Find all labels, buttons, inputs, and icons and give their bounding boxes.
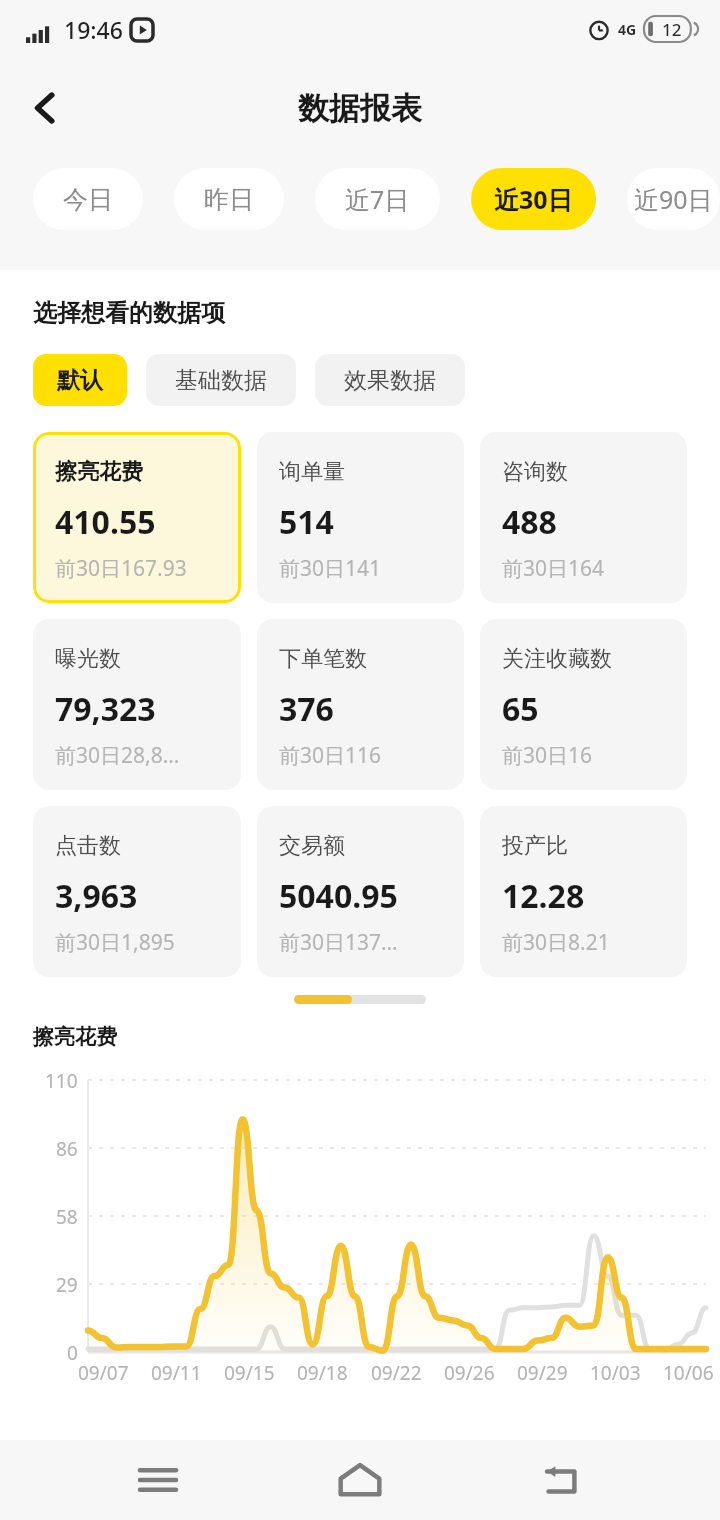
staticText: 19:46 xyxy=(64,14,123,45)
staticText: 点击数 xyxy=(55,832,121,860)
button[interactable]: 下单笔数 xyxy=(257,619,464,790)
button[interactable]: 关注收藏数 xyxy=(480,619,687,790)
button[interactable]: 昨日 xyxy=(174,168,284,230)
staticText: 前30日8.21 xyxy=(502,928,610,957)
staticText: 110 xyxy=(45,1068,78,1092)
staticText: 79,323 xyxy=(55,687,156,731)
staticText: 交易额 xyxy=(279,832,345,860)
button[interactable]: Back xyxy=(518,1440,608,1520)
staticText: 前30日141 xyxy=(279,554,382,583)
staticText: 咨询数 xyxy=(502,458,568,486)
button[interactable]: Back xyxy=(14,77,76,139)
staticText: 前30日137… xyxy=(279,928,398,957)
staticText: 前30日116 xyxy=(279,741,382,770)
staticText: 12.28 xyxy=(502,874,585,918)
staticText: 12 xyxy=(662,18,682,41)
staticText: 前30日1,895 xyxy=(55,928,175,957)
staticText: 擦亮花费 xyxy=(55,458,143,486)
button[interactable]: 基础数据 xyxy=(146,354,296,406)
staticText: 近90日 xyxy=(634,182,713,216)
staticText: 选择想看的数据项 xyxy=(33,298,225,328)
staticText: 10/03 xyxy=(590,1360,641,1386)
staticText: 10/06 xyxy=(663,1360,714,1386)
staticText: 4G xyxy=(618,20,637,39)
button[interactable]: 点击数 xyxy=(33,806,241,977)
staticText: 514 xyxy=(279,500,334,544)
staticText: 09/26 xyxy=(444,1360,495,1386)
button[interactable]: 询单量 xyxy=(257,432,464,603)
staticText: 0 xyxy=(67,1340,78,1364)
button[interactable]: Home xyxy=(315,1440,405,1520)
staticText: 410.55 xyxy=(55,500,156,544)
staticText: 09/29 xyxy=(517,1360,568,1386)
staticText: 询单量 xyxy=(279,458,345,486)
staticText: 曝光数 xyxy=(55,645,121,673)
button[interactable]: 近7日 xyxy=(315,168,440,230)
staticText: 09/22 xyxy=(371,1360,422,1386)
staticText: 29 xyxy=(56,1272,78,1296)
button[interactable]: 效果数据 xyxy=(315,354,465,406)
staticText: 前30日167.93 xyxy=(55,554,187,583)
staticText: 今日 xyxy=(63,184,113,215)
staticText: 09/11 xyxy=(151,1360,202,1386)
staticText: 5040.95 xyxy=(279,874,398,918)
staticText: 下单笔数 xyxy=(279,645,367,673)
staticText: 投产比 xyxy=(502,832,568,860)
staticText: 关注收藏数 xyxy=(502,645,612,673)
staticText: 488 xyxy=(502,500,557,544)
button[interactable]: 擦亮花费 xyxy=(33,432,241,603)
staticText: 09/15 xyxy=(224,1360,275,1386)
staticText: 前30日16 xyxy=(502,741,593,770)
staticText: 前30日28,8… xyxy=(55,741,180,770)
staticText: 效果数据 xyxy=(344,366,436,395)
button[interactable]: Recents xyxy=(113,1440,203,1520)
button[interactable]: 默认 xyxy=(33,354,127,406)
button[interactable]: 咨询数 xyxy=(480,432,687,603)
button[interactable]: 曝光数 xyxy=(33,619,241,790)
staticText: 数据报表 xyxy=(298,89,422,128)
staticText: 376 xyxy=(279,687,334,731)
staticText: 基础数据 xyxy=(175,366,267,395)
staticText: 昨日 xyxy=(204,184,254,215)
staticText: 86 xyxy=(56,1136,78,1160)
staticText: 近30日 xyxy=(494,182,573,216)
button[interactable]: 近30日 xyxy=(471,168,596,230)
button[interactable]: 今日 xyxy=(33,168,143,230)
button[interactable]: 近90日 xyxy=(627,168,720,230)
staticText: 09/18 xyxy=(297,1360,348,1386)
button[interactable]: 投产比 xyxy=(480,806,687,977)
staticText: 3,963 xyxy=(55,874,138,918)
staticText: 擦亮花费 xyxy=(33,1024,117,1050)
staticText: 近7日 xyxy=(345,182,410,216)
staticText: 58 xyxy=(56,1204,78,1228)
staticText: 前30日164 xyxy=(502,554,605,583)
staticText: 65 xyxy=(502,687,539,731)
staticText: 09/07 xyxy=(78,1360,129,1386)
staticText: 默认 xyxy=(57,366,103,395)
button[interactable]: 交易额 xyxy=(257,806,464,977)
